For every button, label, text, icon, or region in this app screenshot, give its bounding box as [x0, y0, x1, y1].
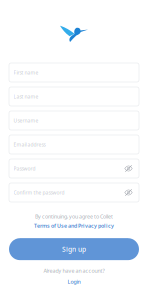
staticText: Username [13, 117, 38, 124]
button[interactable]: Login [67, 278, 80, 285]
button[interactable]: Show password [123, 183, 134, 202]
button[interactable]: Sign up [9, 238, 139, 260]
staticText: By continuing, you agree to Collet [35, 213, 113, 220]
button[interactable]: Show password [123, 159, 134, 178]
staticText: Already have an account? [43, 267, 104, 274]
staticText: Confirm the password [13, 189, 64, 196]
staticText: Sign up [62, 245, 86, 254]
button[interactable]: Terms of Use and Privacy policy [34, 222, 114, 229]
staticText: First name [13, 69, 38, 76]
staticText: Login [67, 278, 80, 285]
staticText: Email address [13, 141, 45, 148]
staticText: Password [13, 165, 35, 172]
staticText: Last name [13, 93, 38, 100]
staticText: Terms of Use and Privacy policy [34, 222, 114, 229]
